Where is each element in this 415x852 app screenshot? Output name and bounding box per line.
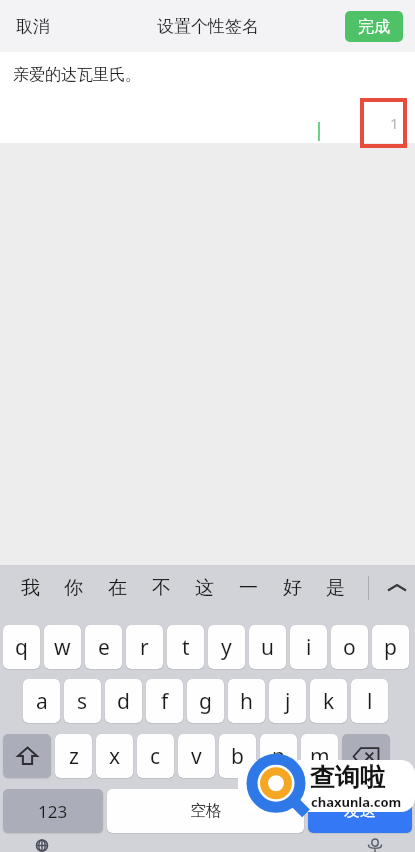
button[interactable]: d	[105, 679, 142, 723]
staticText: z	[69, 742, 79, 771]
button[interactable]: i	[290, 625, 327, 669]
button[interactable]: f	[146, 679, 183, 723]
button[interactable]: u	[249, 625, 286, 669]
button[interactable]: 你	[56, 565, 90, 611]
staticText: h	[240, 687, 253, 716]
staticText: 你	[64, 576, 83, 600]
button[interactable]: t	[167, 625, 204, 669]
staticText: w	[54, 633, 71, 662]
staticText: 完成	[358, 17, 390, 37]
staticText: g	[199, 687, 212, 716]
button[interactable]: q	[3, 625, 40, 669]
button[interactable]: 是	[318, 565, 352, 611]
button[interactable]: 在	[100, 565, 134, 611]
button[interactable]: 空格	[107, 789, 304, 833]
staticText: v	[191, 742, 202, 771]
button[interactable]: Shift	[3, 734, 51, 778]
staticText: q	[15, 633, 28, 662]
staticText: t	[182, 633, 190, 662]
staticText: 查询啦	[310, 762, 385, 793]
staticText: f	[161, 687, 169, 716]
button[interactable]: l	[351, 679, 388, 723]
button[interactable]: r	[126, 625, 163, 669]
staticText: n	[272, 742, 285, 771]
staticText: 我	[21, 576, 40, 600]
staticText: 好	[283, 576, 302, 600]
button[interactable]: v	[178, 734, 215, 778]
staticText: 在	[108, 576, 127, 600]
staticText: chaxunla.com	[311, 793, 402, 811]
button[interactable]: 123	[3, 789, 103, 833]
button[interactable]: 不	[144, 565, 178, 611]
staticText: 亲爱的达瓦里氏。	[13, 65, 141, 85]
button[interactable]: g	[187, 679, 224, 723]
staticText: m	[310, 742, 330, 771]
button[interactable]: Voice input	[353, 839, 397, 852]
staticText: e	[98, 633, 110, 662]
staticText: d	[117, 687, 130, 716]
button[interactable]: 取消	[16, 16, 50, 37]
staticText: c	[150, 742, 161, 771]
staticText: b	[231, 742, 244, 771]
staticText: 是	[326, 576, 345, 600]
staticText: x	[109, 742, 121, 771]
staticText: l	[367, 687, 373, 716]
button[interactable]: 这	[187, 565, 221, 611]
button[interactable]: b	[219, 734, 256, 778]
staticText: i	[306, 633, 312, 662]
button[interactable]: Collapse candidates	[378, 565, 415, 611]
staticText: 发送	[344, 801, 376, 821]
button[interactable]: s	[64, 679, 101, 723]
staticText: 一	[239, 576, 258, 600]
staticText: 这	[195, 576, 214, 600]
button[interactable]: 我	[13, 565, 47, 611]
button[interactable]: 一	[231, 565, 265, 611]
button[interactable]: e	[85, 625, 122, 669]
staticText: s	[77, 687, 88, 716]
staticText: k	[323, 687, 335, 716]
button[interactable]: Change keyboard	[20, 839, 64, 852]
staticText: r	[140, 633, 149, 662]
staticText: j	[285, 687, 291, 716]
button[interactable]: y	[208, 625, 245, 669]
staticText: y	[221, 633, 232, 662]
button[interactable]: z	[55, 734, 92, 778]
button[interactable]: a	[23, 679, 60, 723]
staticText: 空格	[190, 801, 222, 821]
button[interactable]: m	[301, 734, 338, 778]
button[interactable]: p	[372, 625, 409, 669]
button[interactable]: 发送	[308, 789, 412, 833]
button[interactable]: c	[137, 734, 174, 778]
staticText: 设置个性签名	[157, 16, 259, 37]
button[interactable]: o	[331, 625, 368, 669]
button[interactable]: Delete	[342, 734, 390, 778]
staticText: a	[36, 687, 48, 716]
button[interactable]: k	[310, 679, 347, 723]
button[interactable]: w	[44, 625, 81, 669]
staticText: u	[261, 633, 274, 662]
staticText: o	[343, 633, 356, 662]
staticText: 123	[38, 800, 68, 823]
staticText: p	[384, 633, 397, 662]
staticText: 取消	[16, 16, 50, 37]
button[interactable]: n	[260, 734, 297, 778]
staticText: 不	[152, 576, 171, 600]
button[interactable]: 好	[275, 565, 309, 611]
button[interactable]: 完成	[345, 11, 403, 42]
staticText: 1	[390, 113, 399, 133]
button[interactable]: h	[228, 679, 265, 723]
button[interactable]: x	[96, 734, 133, 778]
button[interactable]: j	[269, 679, 306, 723]
